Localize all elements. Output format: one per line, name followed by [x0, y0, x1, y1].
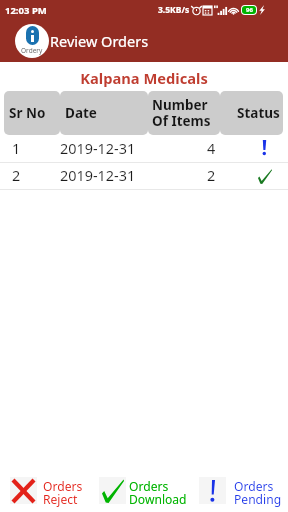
- staticText: Sr No: [9, 104, 46, 122]
- button[interactable]: Orders Reject: [0, 468, 96, 512]
- other: Ordery logo: [15, 24, 49, 58]
- staticText: Orders Download: [129, 478, 187, 507]
- staticText: Ordery: [21, 46, 43, 55]
- staticText: Status: [237, 104, 280, 122]
- staticText: 12:03 PM: [5, 4, 47, 17]
- staticText: 4: [207, 139, 216, 159]
- other: Pending: [258, 140, 272, 155]
- staticText: 1: [12, 139, 21, 159]
- button[interactable]: 1: [0, 136, 288, 163]
- staticText: 96: [246, 6, 253, 14]
- staticText: 2019-12-31: [60, 139, 136, 159]
- staticText: 2: [12, 166, 21, 186]
- other: Done: [258, 169, 272, 184]
- button[interactable]: Orders Pending: [192, 468, 288, 512]
- staticText: Date: [65, 104, 97, 122]
- staticText: Number Of Items: [152, 96, 211, 130]
- button[interactable]: 2: [0, 163, 288, 190]
- staticText: 2019-12-31: [60, 166, 136, 186]
- staticText: Kalpana Medicals: [0, 68, 288, 88]
- button[interactable]: Orders Download: [96, 468, 192, 512]
- staticText: 2: [207, 166, 216, 186]
- staticText: Review Orders: [50, 31, 149, 51]
- staticText: 3.5KB/s: [158, 4, 190, 16]
- staticText: Orders Pending: [234, 478, 282, 507]
- staticText: Orders Reject: [43, 478, 83, 507]
